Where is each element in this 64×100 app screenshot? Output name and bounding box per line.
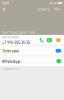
staticText: Добавить <box>36 8 49 11</box>
staticText: +7 916 555‑35‑35 <box>2 39 30 45</box>
button[interactable]: Изм. <box>54 6 60 13</box>
button[interactable]: Добавить <box>36 6 49 13</box>
button[interactable]: мобильный <box>0 35 64 45</box>
button[interactable]: WhatsApp <box>0 56 64 66</box>
staticText: Телеграм <box>2 48 19 53</box>
staticText: мобильный <box>2 35 19 39</box>
staticText: WhatsApp <box>2 58 20 64</box>
button[interactable]: Back <box>1 6 6 13</box>
staticText: 9:41 <box>2 0 9 6</box>
staticText: ПОДЕЛИТЬСЯ <box>2 67 20 70</box>
staticText: Изм. <box>54 8 60 11</box>
button[interactable]: Телеграм <box>0 46 64 56</box>
staticText: Быстрые действия <box>2 29 35 35</box>
